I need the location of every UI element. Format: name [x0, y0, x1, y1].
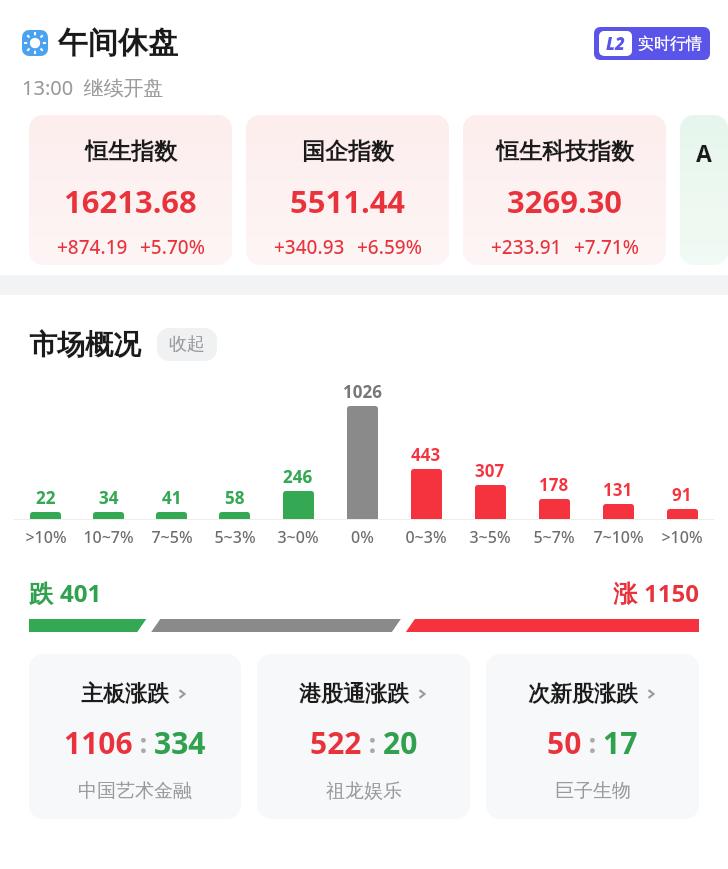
button[interactable]: 国企指数: [246, 115, 449, 265]
staticText: 34: [99, 486, 119, 509]
staticText: +340.93: [274, 234, 345, 260]
staticText: 58: [225, 486, 245, 509]
staticText: +7.71%: [574, 234, 639, 260]
staticText: 次新股涨跌: [528, 680, 638, 708]
staticText: L2: [606, 32, 625, 55]
staticText: 91: [672, 483, 692, 506]
staticText: 334: [154, 722, 206, 763]
staticText: 3269.30: [507, 180, 623, 222]
staticText: 市场概况: [29, 327, 141, 362]
staticText: +5.70%: [140, 234, 205, 260]
button[interactable]: L2: [594, 27, 710, 60]
staticText: :: [133, 725, 154, 760]
staticText: 17: [603, 722, 638, 763]
staticText: 中国艺术金融: [78, 779, 192, 803]
staticText: 22: [36, 486, 56, 509]
staticText: 50: [547, 722, 582, 763]
staticText: 1026: [343, 380, 382, 403]
staticText: 246: [283, 465, 313, 488]
staticText: 20: [383, 722, 418, 763]
staticText: 港股通涨跌: [299, 680, 409, 708]
staticText: 0~3%: [405, 526, 447, 548]
staticText: 443: [411, 443, 441, 466]
staticText: 3~5%: [469, 526, 511, 548]
staticText: 祖龙娱乐: [326, 779, 402, 803]
staticText: 10~7%: [83, 526, 134, 548]
staticText: 实时行情: [638, 34, 702, 54]
button[interactable]: 港股通涨跌: [257, 654, 470, 819]
other: 更多: [175, 687, 189, 701]
staticText: 13:00 继续开盘: [22, 74, 164, 101]
staticText: 午间休盘: [58, 24, 178, 62]
staticText: 跌: [29, 576, 60, 609]
staticText: 5511.44: [290, 180, 406, 222]
staticText: 1150: [644, 576, 699, 609]
staticText: +6.59%: [357, 234, 422, 260]
button[interactable]: 收起: [157, 328, 217, 361]
button[interactable]: 恒生科技指数: [463, 115, 666, 265]
staticText: >10%: [661, 526, 703, 548]
staticText: 5~3%: [214, 526, 256, 548]
staticText: 7~5%: [151, 526, 193, 548]
staticText: 收起: [169, 333, 205, 356]
staticText: 5~7%: [533, 526, 575, 548]
staticText: A: [696, 137, 712, 168]
staticText: 涨: [613, 576, 644, 609]
staticText: 307: [475, 459, 505, 482]
staticText: 3~0%: [277, 526, 319, 548]
button[interactable]: A: [680, 115, 728, 265]
staticText: 主板涨跌: [81, 680, 169, 708]
staticText: 国企指数: [302, 137, 394, 166]
other: 更多: [644, 687, 658, 701]
staticText: :: [362, 725, 383, 760]
staticText: +233.91: [491, 234, 562, 260]
staticText: >10%: [25, 526, 67, 548]
button[interactable]: 次新股涨跌: [486, 654, 699, 819]
staticText: 16213.68: [64, 180, 197, 222]
other: 更多: [415, 687, 429, 701]
staticText: 1106: [64, 722, 133, 763]
staticText: 0%: [351, 526, 374, 548]
staticText: 41: [162, 486, 182, 509]
staticText: 401: [60, 576, 102, 609]
button[interactable]: 主板涨跌: [29, 654, 241, 819]
staticText: 178: [539, 473, 569, 496]
staticText: 131: [603, 478, 633, 501]
staticText: 恒生指数: [85, 137, 177, 166]
button[interactable]: 恒生指数: [29, 115, 232, 265]
staticText: 巨子生物: [555, 779, 631, 803]
staticText: 522: [310, 722, 362, 763]
staticText: 7~10%: [593, 526, 644, 548]
staticText: 恒生科技指数: [496, 137, 634, 166]
staticText: :: [582, 725, 603, 760]
staticText: +874.19: [57, 234, 128, 260]
